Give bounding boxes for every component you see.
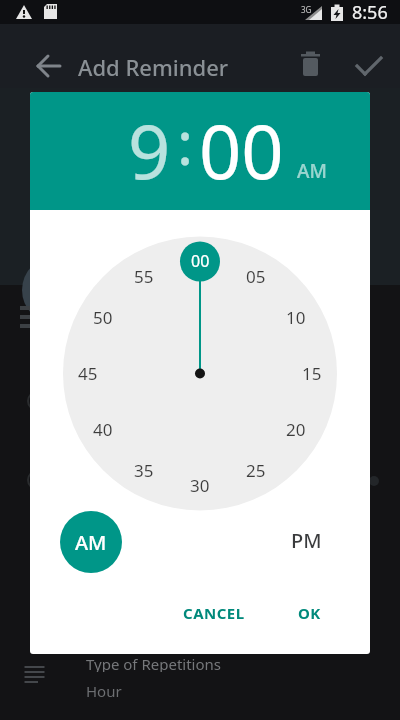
staticText: 40	[93, 418, 113, 440]
button[interactable]: 40	[83, 418, 123, 440]
staticText: 10	[286, 306, 306, 328]
staticText: AM	[75, 529, 107, 556]
button[interactable]: 25	[236, 459, 276, 481]
button[interactable]: CANCEL	[176, 596, 252, 630]
button[interactable]: 55	[124, 265, 164, 287]
button[interactable]: 20	[276, 418, 316, 440]
button[interactable]: 50	[83, 306, 123, 328]
staticText: 20	[286, 418, 306, 440]
staticText: 00	[191, 250, 210, 272]
staticText: 55	[134, 265, 154, 287]
button[interactable]: 10	[276, 306, 316, 328]
button[interactable]: 05	[236, 265, 276, 287]
staticText: OK	[298, 603, 321, 623]
staticText: 25	[246, 459, 266, 481]
staticText: CANCEL	[183, 603, 245, 623]
staticText: 30	[190, 474, 210, 496]
button[interactable]: 00	[180, 250, 220, 272]
staticText: AM	[297, 158, 327, 184]
staticText: 8:56	[352, 0, 388, 24]
staticText: PM	[291, 527, 322, 554]
staticText: Add Reminder	[78, 52, 229, 82]
staticText: 45	[78, 362, 98, 384]
staticText: 9	[128, 100, 171, 192]
staticText: 15	[302, 362, 322, 384]
staticText: 3G	[301, 4, 312, 14]
button[interactable]: 30	[180, 474, 220, 496]
button[interactable]	[350, 48, 390, 84]
button[interactable]: 15	[292, 362, 332, 384]
button[interactable]	[30, 52, 66, 82]
button[interactable]: AM	[60, 511, 122, 573]
staticText: 05	[246, 265, 266, 287]
button[interactable]: OK	[288, 596, 330, 630]
button[interactable]: 35	[124, 459, 164, 481]
staticText: 35	[134, 459, 154, 481]
button[interactable]	[294, 48, 330, 84]
staticText: 50	[93, 306, 113, 328]
staticText: Hour	[86, 681, 122, 699]
staticText: 00	[199, 100, 284, 192]
button[interactable]: PM	[284, 526, 328, 554]
staticText: :	[177, 101, 193, 183]
staticText: Type of Repetitions	[86, 654, 221, 672]
button[interactable]: 45	[68, 362, 108, 384]
